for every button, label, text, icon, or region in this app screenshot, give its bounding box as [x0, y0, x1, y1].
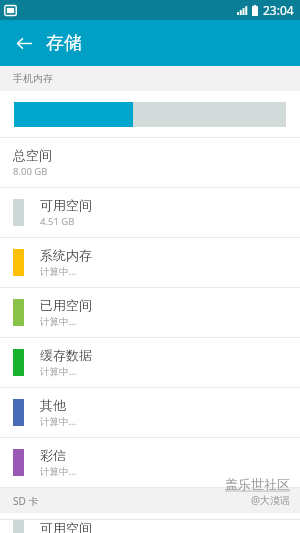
staticText: 计算中... — [40, 315, 77, 328]
staticText: 计算中... — [40, 365, 77, 378]
button[interactable]: 彩信 — [0, 438, 300, 488]
staticText: 可用空间 — [40, 520, 92, 533]
button[interactable]: 其他 — [0, 388, 300, 438]
staticText: 4.51 GB — [40, 215, 75, 228]
button[interactable]: 总空间 — [0, 138, 300, 188]
button[interactable]: Back — [10, 29, 38, 57]
staticText: 总空间 — [13, 147, 52, 163]
staticText: 彩信 — [40, 447, 66, 463]
staticText: 计算中... — [40, 415, 77, 428]
staticText: 已用空间 — [40, 297, 92, 313]
staticText: SD 卡 — [13, 494, 39, 508]
staticText: 盖乐世社区 — [225, 476, 290, 492]
staticText: 系统内存 — [40, 247, 92, 263]
staticText: 8.00 GB — [13, 165, 48, 178]
button[interactable]: 可用空间 — [0, 188, 300, 238]
staticText: 23:04 — [263, 2, 294, 18]
staticText: @大漠谣 — [251, 493, 290, 507]
button[interactable]: 缓存数据 — [0, 338, 300, 388]
staticText: 可用空间 — [40, 197, 92, 213]
button[interactable]: 已用空间 — [0, 288, 300, 338]
staticText: 其他 — [40, 397, 66, 413]
staticText: 计算中... — [40, 265, 77, 278]
button[interactable]: 可用空间 — [13, 520, 300, 533]
staticText: 计算中... — [40, 465, 77, 478]
staticText: 缓存数据 — [40, 347, 92, 363]
staticText: 存储 — [46, 32, 82, 55]
staticText: 手机内存 — [13, 72, 53, 85]
button[interactable]: 系统内存 — [0, 238, 300, 288]
